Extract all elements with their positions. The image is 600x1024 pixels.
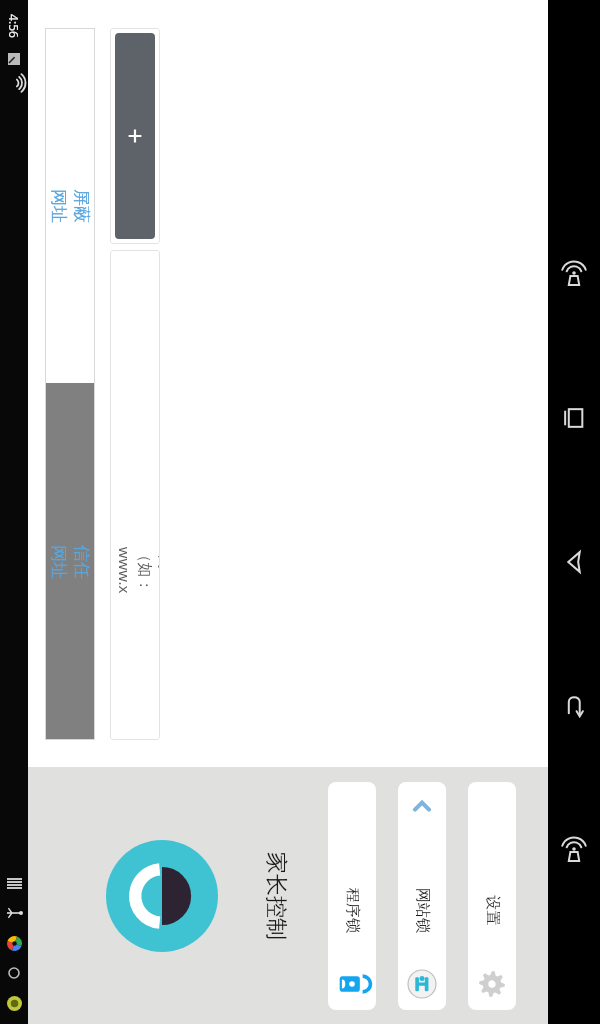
- button[interactable]: Home: [548, 680, 600, 732]
- button[interactable]: 网站锁: [398, 782, 446, 1010]
- staticText: 屏蔽网址: [48, 181, 92, 231]
- button[interactable]: Voice search: [548, 824, 600, 876]
- button[interactable]: 程序锁: [328, 782, 376, 1010]
- button[interactable]: 设置: [468, 782, 516, 1010]
- staticText: 程序锁: [343, 888, 362, 933]
- button[interactable]: 请输入网址（如：www.xxx.com）: [110, 250, 160, 740]
- button[interactable]: Search: [548, 248, 600, 300]
- button[interactable]: Add URL: [115, 33, 155, 239]
- button[interactable]: Back: [548, 536, 600, 588]
- staticText: 4:56: [6, 14, 22, 38]
- staticText: 信任网址: [48, 537, 92, 587]
- staticText: 网站锁: [413, 888, 432, 933]
- staticText: 设置: [482, 895, 501, 925]
- staticText: 家长控制: [262, 852, 290, 940]
- staticText: 请输入网址（如：www.xxx.com）: [110, 545, 160, 595]
- button[interactable]: 信任网址: [45, 383, 95, 740]
- button[interactable]: Recents: [548, 392, 600, 444]
- button[interactable]: 屏蔽网址: [45, 28, 95, 383]
